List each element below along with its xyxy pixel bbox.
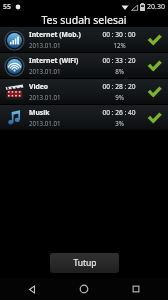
staticText: 8% <box>115 67 124 75</box>
staticText: 12% <box>113 41 126 49</box>
button[interactable]: Internet (Mob.) <box>0 27 168 52</box>
staticText: Internet (WiFi) <box>29 56 79 65</box>
other: Completed <box>144 108 164 128</box>
staticText: Video <box>29 82 49 91</box>
button[interactable]: Tutup <box>50 253 119 273</box>
other: Completed <box>144 82 164 102</box>
other: Completed <box>144 56 164 76</box>
staticText: 2013.01.01 <box>29 67 61 75</box>
staticText: 3% <box>115 119 124 127</box>
staticText: 2013.01.01 <box>29 41 61 49</box>
staticText: 00 : 30 : 00 <box>102 30 136 39</box>
staticText: 00 : 28 : 20 <box>102 82 136 91</box>
button[interactable]: Video <box>0 79 168 104</box>
button[interactable]: Home <box>58 278 110 300</box>
staticText: Internet (Mob.) <box>29 30 81 39</box>
button[interactable]: Back <box>6 278 58 300</box>
staticText: 20.30 <box>147 2 165 12</box>
staticText: 55 <box>3 2 12 12</box>
button[interactable]: Recent apps <box>110 278 162 300</box>
staticText: Musik <box>29 108 50 117</box>
staticText: Tutup <box>73 257 97 269</box>
staticText: 9% <box>115 93 124 101</box>
other: Completed <box>144 30 164 50</box>
staticText: 2013.01.01 <box>29 93 61 101</box>
button[interactable]: Musik <box>0 105 168 130</box>
staticText: 2013.01.01 <box>29 119 61 127</box>
staticText: Tes sudah selesai <box>41 13 127 27</box>
staticText: 00 : 26 : 40 <box>102 108 136 117</box>
button[interactable]: Internet (WiFi) <box>0 53 168 78</box>
staticText: 00 : 33 : 20 <box>102 56 136 65</box>
